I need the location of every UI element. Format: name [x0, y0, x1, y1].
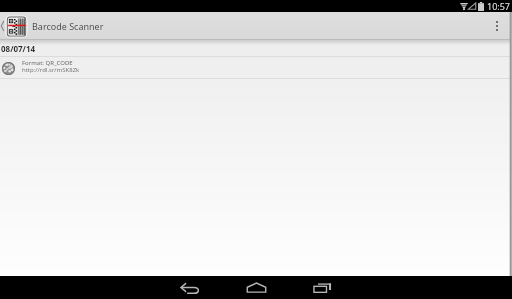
staticText: http://rdl.sr/mSK8Zk [22, 66, 80, 74]
staticText: 08/07/14 [1, 43, 36, 54]
button[interactable]: Barcode Scanner [0, 12, 104, 40]
button[interactable]: Format: QR_CODE [0, 57, 512, 79]
button[interactable]: Home [228, 276, 284, 299]
staticText: 10:57 [487, 0, 511, 12]
button[interactable]: Recent apps [294, 276, 350, 299]
staticText: Format: QR_CODE [22, 59, 73, 67]
button[interactable]: Back [162, 276, 218, 299]
button[interactable]: More options [486, 12, 508, 40]
staticText: Barcode Scanner [32, 20, 104, 32]
